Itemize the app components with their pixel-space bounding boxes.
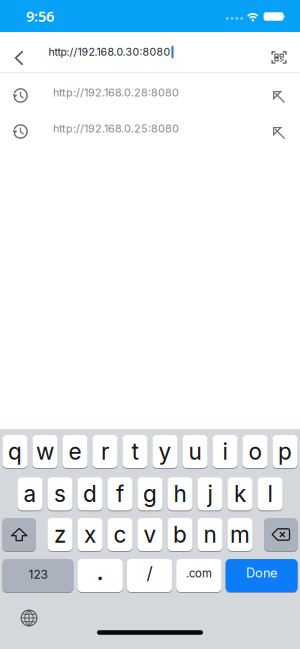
- staticText: Done: [246, 565, 277, 581]
- staticText: q: [8, 438, 22, 465]
- button[interactable]: r: [92, 434, 118, 468]
- staticText: 123: [28, 567, 47, 582]
- staticText: .: [97, 554, 104, 587]
- button[interactable]: http://192.168.0.30:8080: [48, 32, 174, 72]
- staticText: m: [230, 521, 250, 548]
- staticText: http://192.168.0.28:8080: [53, 86, 179, 99]
- button[interactable]: .com: [176, 558, 222, 592]
- staticText: n: [203, 521, 216, 548]
- staticText: x: [84, 521, 96, 548]
- button[interactable]: Delete: [264, 517, 298, 551]
- staticText: 9:56: [26, 6, 54, 26]
- staticText: b: [173, 521, 187, 548]
- staticText: a: [23, 480, 36, 507]
- staticText: v: [143, 521, 156, 548]
- staticText: w: [36, 438, 54, 465]
- staticText: p: [278, 438, 292, 465]
- button[interactable]: 123: [2, 558, 73, 592]
- button[interactable]: http://192.168.0.25:8080: [0, 112, 261, 148]
- staticText: i: [222, 438, 227, 465]
- staticText: /: [146, 562, 152, 583]
- button[interactable]: o: [242, 434, 268, 468]
- staticText: d: [83, 480, 97, 507]
- button[interactable]: x: [77, 517, 103, 551]
- button[interactable]: Insert suggestion: [261, 112, 300, 148]
- staticText: g: [143, 480, 157, 507]
- button[interactable]: t: [122, 434, 148, 468]
- button[interactable]: f: [107, 477, 133, 511]
- staticText: s: [54, 480, 66, 507]
- staticText: h: [173, 480, 186, 507]
- button[interactable]: Scan QR code: [262, 40, 296, 74]
- button[interactable]: s: [47, 477, 73, 511]
- button[interactable]: h: [167, 477, 193, 511]
- button[interactable]: y: [152, 434, 178, 468]
- button[interactable]: Shift: [2, 517, 36, 551]
- button[interactable]: a: [17, 477, 43, 511]
- staticText: y: [158, 438, 171, 465]
- staticText: u: [188, 438, 201, 465]
- staticText: l: [267, 480, 272, 507]
- staticText: z: [54, 521, 66, 548]
- button[interactable]: n: [197, 517, 223, 551]
- button[interactable]: m: [227, 517, 253, 551]
- button[interactable]: /: [127, 558, 172, 592]
- staticText: f: [116, 480, 124, 507]
- button[interactable]: i: [212, 434, 238, 468]
- button[interactable]: g: [137, 477, 163, 511]
- button[interactable]: u: [182, 434, 208, 468]
- button[interactable]: q: [2, 434, 28, 468]
- staticText: e: [68, 438, 81, 465]
- staticText: r: [101, 438, 109, 465]
- button[interactable]: Back: [4, 40, 34, 76]
- button[interactable]: c: [107, 517, 133, 551]
- button[interactable]: v: [137, 517, 163, 551]
- button[interactable]: d: [77, 477, 103, 511]
- staticText: .com: [186, 567, 212, 580]
- button[interactable]: b: [167, 517, 193, 551]
- button[interactable]: Insert suggestion: [261, 76, 300, 112]
- button[interactable]: Next keyboard: [12, 601, 46, 635]
- button[interactable]: l: [257, 477, 283, 511]
- button[interactable]: http://192.168.0.28:8080: [0, 76, 261, 112]
- button[interactable]: e: [62, 434, 88, 468]
- button[interactable]: .: [77, 558, 123, 592]
- button[interactable]: Done: [226, 558, 298, 592]
- button[interactable]: w: [32, 434, 58, 468]
- staticText: http://192.168.0.25:8080: [53, 122, 179, 135]
- staticText: k: [234, 480, 246, 507]
- staticText: j: [207, 480, 212, 507]
- staticText: c: [113, 521, 126, 548]
- staticText: http://192.168.0.30:8080: [48, 46, 170, 58]
- button[interactable]: j: [197, 477, 223, 511]
- button[interactable]: z: [47, 517, 73, 551]
- staticText: t: [131, 438, 138, 465]
- button[interactable]: p: [272, 434, 298, 468]
- staticText: o: [248, 438, 261, 465]
- button[interactable]: k: [227, 477, 253, 511]
